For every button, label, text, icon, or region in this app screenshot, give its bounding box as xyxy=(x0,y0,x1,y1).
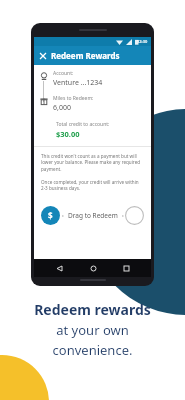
staticText: $30.00 xyxy=(56,129,80,139)
staticText: $ xyxy=(48,210,53,221)
staticText: 12:30 xyxy=(137,39,148,44)
button[interactable]: Recents xyxy=(118,260,134,276)
staticText: at your own xyxy=(8,321,177,339)
staticText: Once completed, your credit will arrive … xyxy=(41,179,144,192)
button[interactable]: Back xyxy=(51,260,67,276)
button[interactable]: Drag to Redeem xyxy=(34,203,151,227)
staticText: convenience. xyxy=(8,341,177,359)
button[interactable]: Close xyxy=(34,46,51,65)
button[interactable]: Home xyxy=(85,260,101,276)
staticText: Drag to Redeem xyxy=(68,211,118,220)
staticText: Total credit to account: xyxy=(56,121,110,128)
staticText: Account: xyxy=(53,70,74,77)
staticText: 6,000 xyxy=(53,103,71,113)
staticText: This credit won't count as a payment but… xyxy=(41,153,144,173)
staticText: Venture ...1234 xyxy=(53,78,103,88)
staticText: Redeem Rewards xyxy=(51,50,120,61)
staticText: Redeem rewards xyxy=(8,300,177,319)
staticText: Miles to Redeem: xyxy=(53,95,94,102)
